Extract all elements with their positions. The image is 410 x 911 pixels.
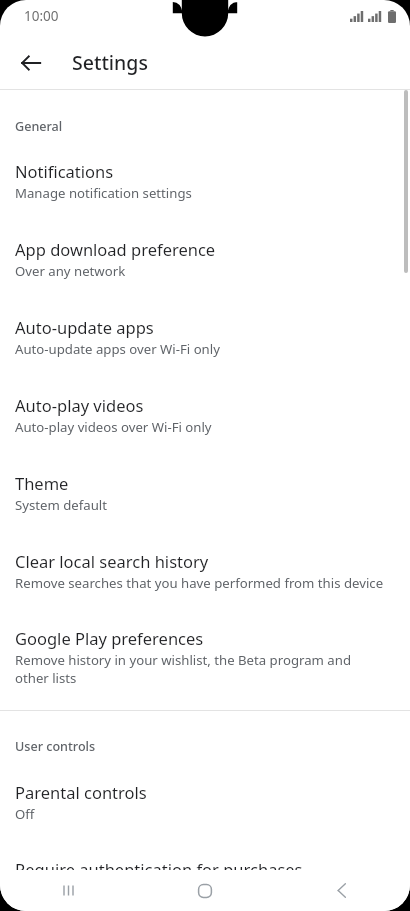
staticText: System default	[15, 496, 108, 514]
staticText: Require authentication for purchases	[15, 858, 303, 870]
staticText: Remove searches that you have performed …	[15, 574, 384, 592]
button[interactable]: Notifications	[0, 160, 410, 202]
button[interactable]: Parental controls	[0, 781, 410, 823]
button[interactable]: Theme	[0, 472, 410, 514]
staticText: Manage notification settings	[15, 184, 192, 202]
button[interactable]: Back	[273, 870, 410, 911]
staticText: Auto-update apps	[15, 316, 154, 338]
button[interactable]: Back	[9, 41, 53, 85]
staticText: Off	[15, 805, 35, 823]
staticText: App download preference	[15, 238, 216, 260]
button[interactable]: App download preference	[0, 238, 410, 280]
staticText: Clear local search history	[15, 550, 209, 572]
staticText: Google Play preferences	[15, 627, 204, 649]
staticText: Settings	[72, 49, 148, 76]
staticText: Auto-play videos over Wi-Fi only	[15, 418, 212, 436]
button[interactable]: Recent apps	[0, 870, 136, 911]
staticText: Parental controls	[15, 781, 147, 803]
staticText: Auto-play videos	[15, 394, 144, 416]
staticText: Theme	[15, 472, 69, 494]
staticText: User controls	[15, 738, 96, 755]
staticText: Remove history in your wishlist, the Bet…	[15, 651, 386, 687]
button[interactable]: Auto-play videos	[0, 394, 410, 436]
button[interactable]: Clear local search history	[0, 550, 410, 592]
staticText: 10:00	[24, 7, 59, 25]
staticText: General	[15, 118, 63, 135]
staticText: Auto-update apps over Wi-Fi only	[15, 340, 220, 358]
button[interactable]: Google Play preferences	[0, 627, 410, 687]
button[interactable]: Home	[136, 870, 273, 911]
button[interactable]: Auto-update apps	[0, 316, 410, 358]
staticText: Over any network	[15, 262, 126, 280]
staticText: Notifications	[15, 160, 114, 182]
